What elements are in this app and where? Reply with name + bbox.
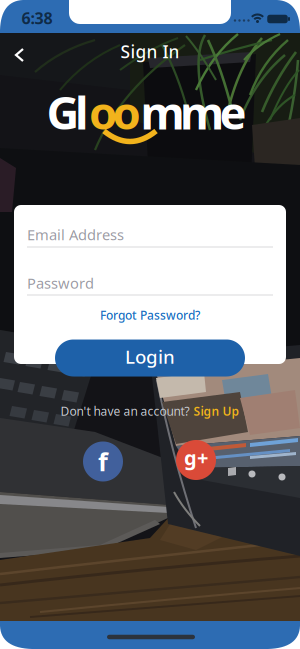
staticText: Forgot Password? xyxy=(100,307,200,323)
button[interactable]: Forgot Password? xyxy=(100,307,200,323)
staticText: Gl xyxy=(46,82,89,142)
staticText: g+ xyxy=(184,444,208,471)
button[interactable]: Back xyxy=(0,0,300,649)
staticText: 6:38 xyxy=(21,7,52,29)
staticText: Sign Up xyxy=(193,403,239,419)
button[interactable]: Sign Up xyxy=(193,403,239,419)
button[interactable]: Login xyxy=(55,339,245,376)
button[interactable]: Sign in with Google xyxy=(176,440,216,480)
staticText: mme xyxy=(140,82,246,142)
staticText: oo xyxy=(89,82,140,142)
staticText: Login xyxy=(125,344,175,369)
staticText: Password xyxy=(27,273,94,293)
staticText: Email Address xyxy=(27,225,124,244)
staticText: Sign In xyxy=(120,40,179,63)
staticText: Don't have an account? xyxy=(60,403,189,419)
staticText: f xyxy=(98,445,108,478)
button[interactable]: Sign in with Facebook xyxy=(83,441,123,481)
